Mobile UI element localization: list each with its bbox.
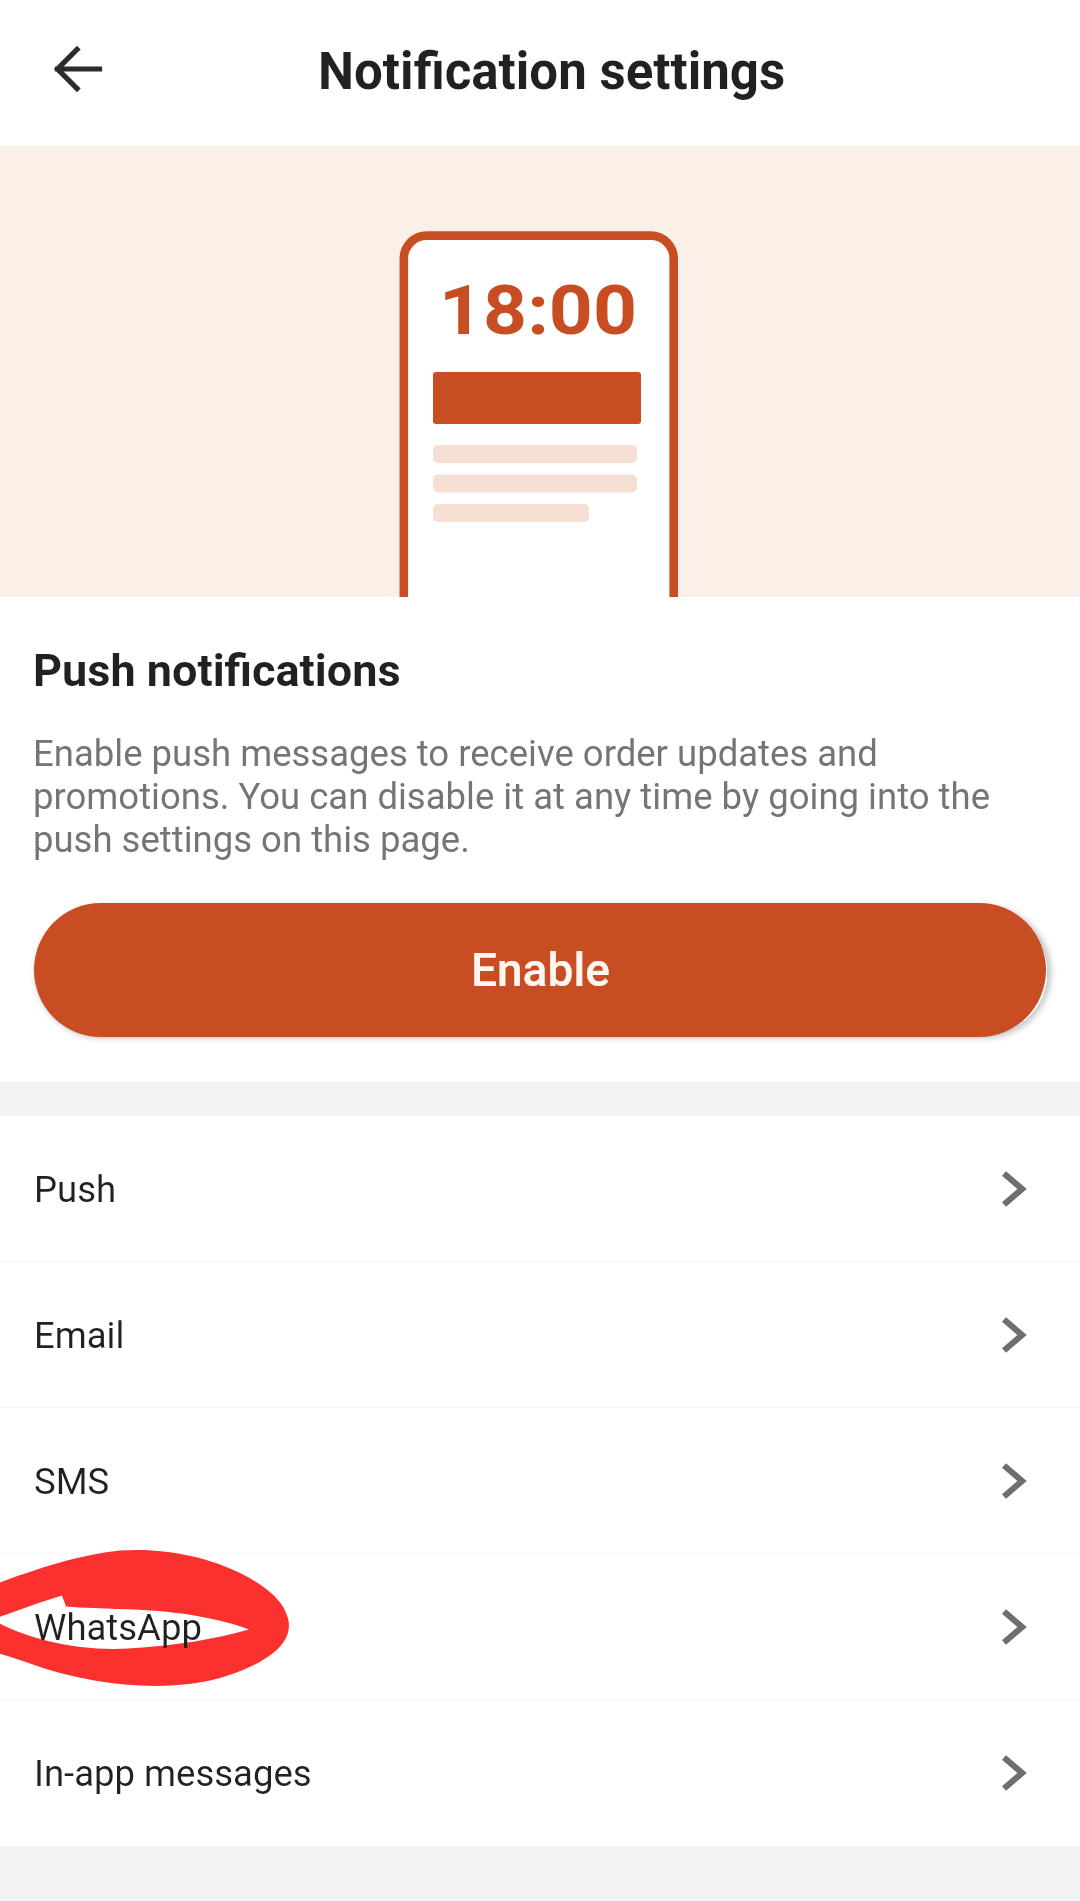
staticText: Push notifications [33,644,401,697]
staticText: In-app messages [34,1752,312,1795]
staticText: SMS [34,1460,110,1503]
button[interactable]: Email [0,1262,1080,1408]
button[interactable]: Back [30,21,127,118]
staticText: WhatsApp [34,1606,202,1649]
staticText: Email [34,1314,125,1357]
button[interactable]: SMS [0,1408,1080,1554]
button[interactable]: In-app messages [0,1700,1080,1846]
staticText: Enable push messages to receive order up… [33,732,1021,861]
button[interactable]: WhatsApp [0,1554,1080,1700]
staticText: Notification settings [318,42,786,102]
button[interactable]: Push [0,1116,1080,1262]
staticText: Push [34,1168,117,1211]
staticText: 18:00 [439,271,638,351]
staticText: Enable [471,943,610,997]
button[interactable]: Enable [34,903,1046,1037]
